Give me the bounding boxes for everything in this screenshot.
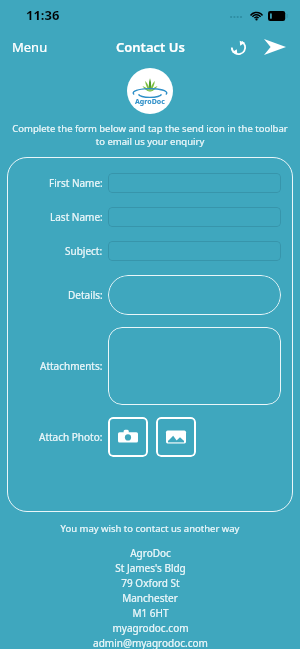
staticText: 11:36 [26, 6, 60, 24]
staticText: You may wish to contact us another way [0, 522, 300, 535]
staticText: Attach Photo: [39, 430, 103, 444]
button[interactable]: Choose image [156, 417, 196, 457]
button[interactable] [108, 207, 281, 227]
staticText: Details: [68, 288, 103, 302]
staticText: 79 Oxford St [121, 576, 180, 590]
button[interactable]: Refresh [222, 31, 254, 63]
button[interactable]: Take photo [108, 417, 148, 457]
staticText: Subject: [65, 244, 103, 258]
staticText: St James's Bldg [115, 561, 186, 575]
staticText: Complete the form below and tap the send… [10, 122, 290, 148]
staticText: Contact Us [116, 38, 185, 56]
staticText: AgroDoc [130, 546, 171, 560]
staticText: admin@myagrodoc.com [93, 636, 208, 649]
staticText: Manchester [122, 591, 178, 605]
button[interactable] [108, 241, 281, 261]
staticText: Menu [12, 38, 48, 56]
button[interactable] [108, 275, 281, 315]
button[interactable] [108, 327, 281, 405]
staticText: Attachments: [40, 359, 103, 373]
button[interactable] [108, 173, 281, 193]
staticText: myagrodoc.com [112, 621, 189, 635]
button[interactable]: Menu [0, 34, 58, 60]
staticText: Last Name: [50, 210, 103, 224]
staticText: AgroDoc [135, 97, 165, 107]
button[interactable]: Send [258, 30, 292, 64]
staticText: First Name: [49, 176, 103, 190]
staticText: M1 6HT [132, 606, 169, 620]
